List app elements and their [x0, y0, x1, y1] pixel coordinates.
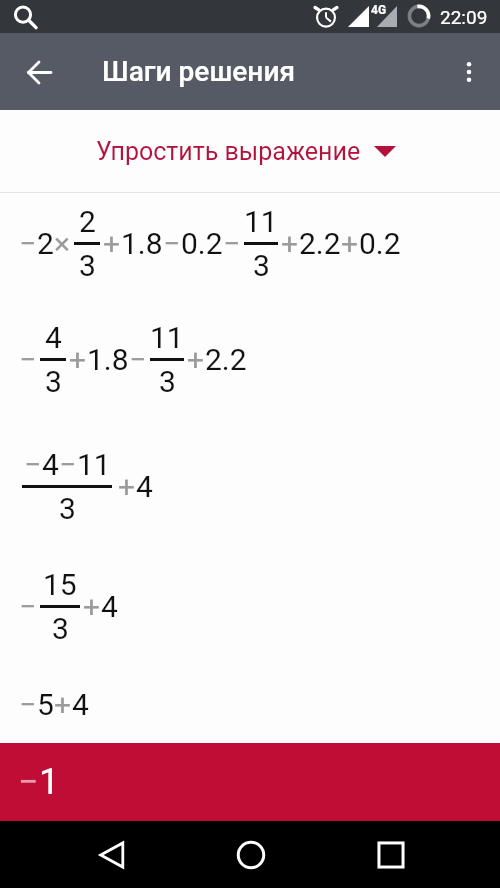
button[interactable]: Recent apps: [368, 832, 414, 878]
staticText: 11: [150, 320, 184, 355]
button[interactable]: Упростить выражение: [0, 110, 500, 192]
staticText: −: [19, 226, 37, 261]
staticText: −: [59, 447, 77, 482]
staticText: 22:09: [440, 6, 488, 28]
staticText: 3: [159, 364, 176, 399]
staticText: −: [19, 687, 37, 722]
staticText: 2: [37, 226, 54, 261]
staticText: 3: [79, 248, 96, 283]
staticText: 3: [52, 611, 69, 646]
staticText: −: [129, 342, 147, 377]
staticText: −: [24, 447, 42, 482]
staticText: 3: [45, 364, 62, 399]
staticText: 4: [136, 469, 153, 504]
staticText: +: [187, 342, 205, 377]
button[interactable]: Back: [11, 44, 67, 100]
staticText: 4: [45, 320, 62, 355]
staticText: −: [19, 589, 37, 624]
staticText: 3: [59, 491, 76, 526]
staticText: 4: [72, 687, 89, 722]
staticText: +: [69, 342, 87, 377]
button[interactable]: Home: [228, 832, 274, 878]
staticText: 11: [77, 447, 111, 482]
button[interactable]: More options: [444, 47, 494, 97]
staticText: 3: [253, 248, 270, 283]
staticText: −: [163, 226, 181, 261]
staticText: 2.2: [205, 342, 247, 377]
staticText: ×: [54, 226, 71, 261]
button[interactable]: −: [0, 743, 500, 821]
staticText: 4G: [371, 3, 387, 17]
button[interactable]: Back: [90, 832, 136, 878]
staticText: 1.8: [121, 226, 163, 261]
staticText: Упростить выражение: [96, 137, 361, 166]
staticText: Шаги решения: [102, 55, 296, 88]
staticText: 11: [244, 204, 278, 239]
staticText: 0.2: [181, 226, 223, 261]
staticText: 2.2: [299, 226, 341, 261]
staticText: 2: [79, 204, 96, 239]
staticText: +: [83, 589, 101, 624]
staticText: +: [103, 226, 121, 261]
staticText: +: [54, 687, 72, 722]
staticText: 5: [37, 687, 54, 722]
staticText: −: [19, 342, 37, 377]
staticText: −: [18, 761, 39, 803]
staticText: 4: [101, 589, 118, 624]
staticText: 1: [39, 761, 60, 803]
staticText: 1.8: [87, 342, 129, 377]
staticText: 4: [42, 447, 59, 482]
staticText: 0.2: [359, 226, 401, 261]
staticText: 15: [43, 567, 77, 602]
button[interactable]: Search: [0, 0, 40, 33]
staticText: −: [223, 226, 241, 261]
staticText: +: [341, 226, 359, 261]
staticText: +: [281, 226, 299, 261]
staticText: +: [118, 469, 136, 504]
